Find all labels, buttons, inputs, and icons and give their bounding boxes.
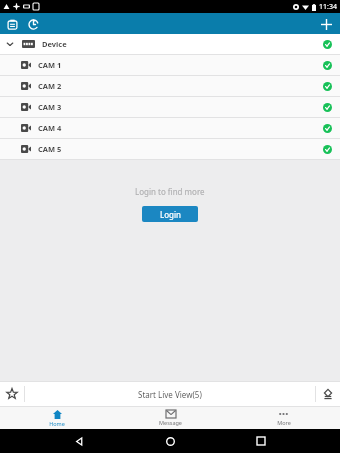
button[interactable]: Back xyxy=(67,429,91,453)
button[interactable]: More xyxy=(227,407,340,429)
button[interactable]: CAM 4 xyxy=(0,118,340,138)
button[interactable]: History xyxy=(26,17,40,31)
button[interactable]: CAM 2 xyxy=(0,76,340,96)
staticText: 11:34 xyxy=(319,2,337,12)
button[interactable]: Clear xyxy=(316,382,340,406)
button[interactable]: CAM 3 xyxy=(0,97,340,117)
staticText: Home xyxy=(49,420,65,427)
staticText: CAM 1 xyxy=(38,60,62,70)
staticText: Start Live View(5) xyxy=(138,389,202,400)
staticText: CAM 5 xyxy=(38,144,62,154)
button[interactable]: Login xyxy=(142,206,198,222)
button[interactable]: Home xyxy=(158,429,182,453)
staticText: CAM 2 xyxy=(38,81,62,91)
button[interactable]: Home xyxy=(0,407,114,429)
button[interactable]: CAM 5 xyxy=(0,139,340,159)
staticText: Login xyxy=(160,209,181,220)
staticText: CAM 4 xyxy=(38,123,62,133)
button[interactable]: Recents xyxy=(249,429,273,453)
button[interactable]: Devices xyxy=(5,17,19,31)
button[interactable]: Start Live View(5) xyxy=(25,382,315,406)
staticText: CAM 3 xyxy=(38,102,62,112)
button[interactable]: CAM 1 xyxy=(0,55,340,75)
staticText: Login to find more xyxy=(135,186,205,197)
staticText: Message xyxy=(159,419,182,426)
button[interactable]: Favorites xyxy=(0,382,24,406)
staticText: More xyxy=(277,419,291,426)
button[interactable]: Device xyxy=(0,34,340,54)
button[interactable]: Add device xyxy=(318,16,334,32)
staticText: Device xyxy=(42,39,67,49)
button[interactable]: Message xyxy=(114,407,227,429)
